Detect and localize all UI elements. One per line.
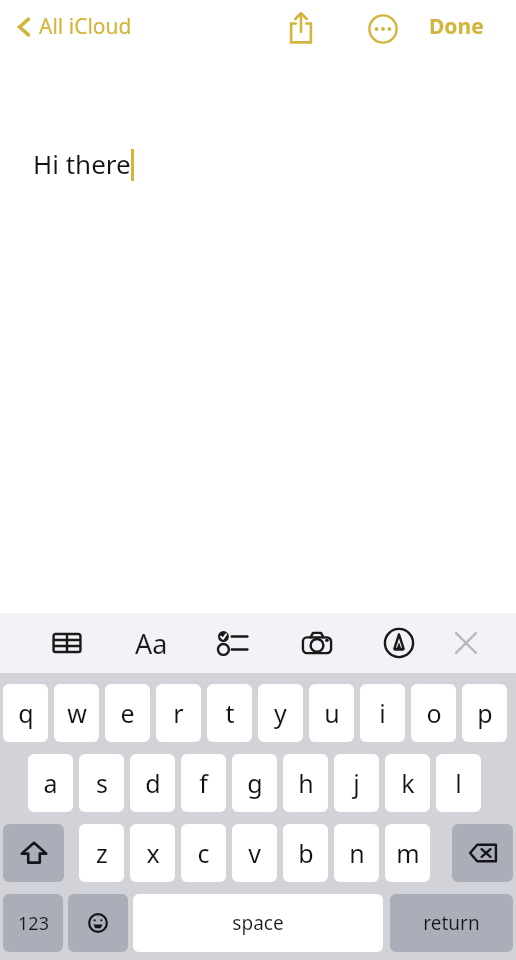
button[interactable]: k [385,754,430,812]
button[interactable]: q [3,684,48,742]
button[interactable]: s [79,754,124,812]
staticText: b [298,836,314,870]
button[interactable]: z [79,824,124,882]
button[interactable]: Emoji [68,894,128,952]
button[interactable]: Camera [295,623,339,663]
button[interactable]: i [360,684,405,742]
staticText: Aa [135,625,168,662]
staticText: z [96,836,108,870]
button[interactable]: n [334,824,379,882]
button[interactable]: u [309,684,354,742]
button[interactable]: space [133,894,383,952]
button[interactable]: All iCloud [10,8,136,45]
staticText: p [477,696,493,730]
staticText: Hi there [33,146,131,181]
staticText: 123 [18,911,49,936]
button[interactable]: x [130,824,175,882]
button[interactable]: j [334,754,379,812]
button[interactable]: Done [421,8,492,45]
staticText: e [120,696,135,730]
button[interactable]: d [130,754,175,812]
staticText: h [298,766,314,800]
staticText: r [173,696,184,730]
staticText: t [225,696,235,730]
button[interactable]: Markup [377,623,421,663]
button[interactable]: f [181,754,226,812]
button[interactable]: h [283,754,328,812]
staticText: m [396,836,420,870]
button[interactable]: Backspace [452,824,513,882]
button[interactable]: e [105,684,150,742]
button[interactable]: w [54,684,99,742]
button[interactable]: 123 [3,894,63,952]
button[interactable]: Shift [3,824,64,882]
staticText: l [455,766,462,800]
button[interactable]: g [232,754,277,812]
button[interactable]: m [385,824,430,882]
staticText: f [199,766,208,800]
staticText: return [423,910,480,936]
staticText: s [96,766,108,800]
staticText: space [232,910,284,936]
button[interactable]: c [181,824,226,882]
button[interactable]: Insert table [45,623,89,663]
button[interactable]: l [436,754,481,812]
button[interactable]: o [411,684,456,742]
staticText: v [248,836,261,870]
staticText: c [197,836,210,870]
staticText: y [274,696,287,730]
staticText: i [379,696,386,730]
button[interactable]: r [156,684,201,742]
staticText: Done [429,12,484,41]
staticText: w [67,696,87,730]
button[interactable]: p [462,684,507,742]
staticText: o [426,696,442,730]
staticText: d [145,766,161,800]
button[interactable]: More options [361,7,405,51]
staticText: All iCloud [39,12,132,41]
staticText: x [146,836,160,870]
button[interactable]: Hide keyboard [444,623,488,663]
button[interactable]: v [232,824,277,882]
button[interactable]: Share [279,6,323,50]
staticText: u [324,696,340,730]
button[interactable]: Checklist [211,623,255,663]
staticText: n [349,836,365,870]
button[interactable]: Aa [124,623,178,663]
staticText: g [247,766,263,800]
button[interactable]: y [258,684,303,742]
button[interactable]: b [283,824,328,882]
staticText: a [43,766,58,800]
staticText: q [18,696,34,730]
staticText: j [353,766,360,800]
button[interactable]: return [390,894,513,952]
staticText: k [401,766,415,800]
button[interactable]: a [28,754,73,812]
button[interactable]: t [207,684,252,742]
